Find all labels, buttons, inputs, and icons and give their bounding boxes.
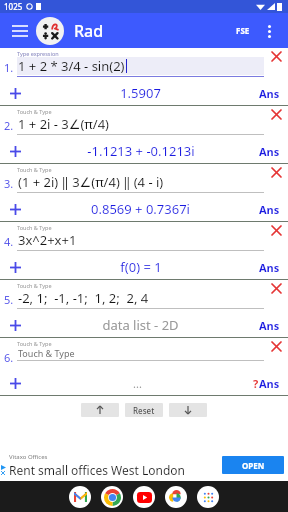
- staticText: Ans: [259, 144, 280, 159]
- staticText: Rad: [74, 20, 104, 42]
- button[interactable]: ?: [251, 374, 282, 393]
- staticText: Touch & Type: [17, 282, 52, 289]
- staticText: Ans: [259, 376, 280, 391]
- button[interactable]: Delete row 5: [268, 280, 284, 296]
- staticText: FSE: [236, 25, 250, 36]
- button[interactable]: 1.: [0, 48, 288, 105]
- staticText: 4.: [4, 234, 14, 249]
- button[interactable]: Scroll down: [169, 403, 207, 417]
- staticText: -2, 1; -1, -1; 1, 2; 2, 4: [18, 289, 149, 307]
- button[interactable]: Add row: [6, 374, 24, 392]
- button[interactable]: 3.: [0, 163, 288, 221]
- button[interactable]: Menu: [8, 19, 32, 43]
- staticText: 1.: [4, 60, 14, 75]
- button[interactable]: Photos: [165, 486, 187, 508]
- staticText: f(0) = 1: [120, 258, 162, 276]
- staticText: Ans: [259, 202, 280, 217]
- staticText: 1.5907: [120, 84, 161, 102]
- button[interactable]: Delete row 4: [268, 222, 284, 238]
- button[interactable]: Delete row 6: [268, 338, 284, 354]
- button[interactable]: Add row: [6, 258, 24, 276]
- staticText: 1 + 2 * 3/4 - sin(2): [18, 57, 125, 75]
- staticText: -1.1213 + -0.1213i: [87, 142, 195, 160]
- button[interactable]: Ans: [257, 316, 282, 335]
- staticText: 3x^2+x+1: [18, 231, 77, 249]
- button[interactable]: Delete row 2: [268, 106, 284, 122]
- staticText: Ans: [259, 318, 280, 333]
- staticText: OPEN: [242, 460, 265, 471]
- staticText: 0.8569 + 0.7367i: [91, 200, 190, 218]
- staticText: 3.: [4, 176, 14, 191]
- staticText: data list - 2D: [102, 316, 179, 334]
- button[interactable]: Ans: [257, 258, 282, 277]
- staticText: Touch & Type: [17, 340, 52, 347]
- staticText: ...: [133, 376, 142, 391]
- staticText: ?: [253, 376, 259, 391]
- button[interactable]: 6.: [0, 337, 288, 395]
- staticText: Touch & Type: [17, 224, 52, 231]
- button[interactable]: Delete row 1: [268, 48, 284, 64]
- button[interactable]: 2.: [0, 105, 288, 163]
- staticText: 2.: [4, 118, 14, 133]
- button[interactable]: Chrome: [101, 486, 123, 508]
- button[interactable]: All apps: [197, 486, 219, 508]
- staticText: Vitaxo Offices: [9, 453, 48, 461]
- staticText: 1025: [4, 1, 23, 12]
- button[interactable]: App icon: [36, 17, 64, 45]
- staticText: Reset: [133, 405, 155, 416]
- button[interactable]: Add row: [6, 84, 24, 102]
- staticText: Touch & Type: [17, 108, 52, 115]
- staticText: 5.: [4, 292, 14, 307]
- staticText: Type expression: [17, 50, 59, 57]
- button[interactable]: Vitaxo Offices: [0, 449, 288, 481]
- button[interactable]: More options: [258, 20, 280, 42]
- staticText: Touch & Type: [17, 166, 52, 173]
- button[interactable]: Add row: [6, 316, 24, 334]
- button[interactable]: Delete row 3: [268, 164, 284, 180]
- button[interactable]: YouTube: [133, 486, 155, 508]
- button[interactable]: 4.: [0, 221, 288, 279]
- staticText: (1 + 2i) ‖ 3∠(π/4) ‖ (4 - i): [18, 173, 164, 191]
- staticText: 1 + 2i - 3∠(π/4): [18, 115, 110, 133]
- staticText: Ans: [259, 86, 280, 101]
- button[interactable]: FSE: [232, 21, 254, 40]
- button[interactable]: Ans: [257, 142, 282, 161]
- button[interactable]: OPEN: [222, 456, 284, 474]
- staticText: Ans: [259, 260, 280, 275]
- button[interactable]: Gmail: [69, 486, 91, 508]
- button[interactable]: Add row: [6, 200, 24, 218]
- button[interactable]: Ans: [257, 200, 282, 219]
- button[interactable]: Scroll up: [81, 403, 119, 417]
- button[interactable]: 5.: [0, 279, 288, 337]
- button[interactable]: Ans: [257, 84, 282, 103]
- staticText: Rent small offices West London: [9, 462, 186, 478]
- button[interactable]: Add row: [6, 142, 24, 160]
- staticText: 6.: [4, 350, 14, 365]
- button[interactable]: Reset: [125, 403, 163, 417]
- staticText: Touch & Type: [18, 347, 75, 359]
